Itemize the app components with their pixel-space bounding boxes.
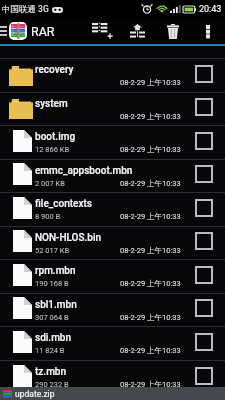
button[interactable]: Select recovery [188,59,219,92]
staticText: 08-2-29 上午10:33 [120,313,181,322]
staticText: 08-2-29 上午10:33 [120,212,181,221]
staticText: NON-HLOS.bin [35,232,102,244]
staticText: 中国联通 3G [2,4,49,15]
button[interactable]: system [0,93,225,125]
button[interactable]: boot.img [0,126,225,159]
staticText: 08-2-29 上午10:33 [120,112,181,121]
staticText: sdi.mbn [35,332,72,344]
button[interactable]: Select sdi.mbn [188,327,219,360]
staticText: 20:43 [199,4,222,15]
button[interactable]: rpm.mbn [0,260,225,293]
staticText: 8 900 B [35,212,61,221]
staticText: 08-2-29 上午10:33 [120,179,181,188]
button[interactable]: Select boot.img [188,126,219,159]
button[interactable]: Select rpm.mbn [188,260,219,293]
staticText: 08-2-29 上午10:33 [120,279,181,288]
staticText: 11 824 B [35,346,65,355]
button[interactable]: Select NON-HLOS.bin [188,227,219,259]
button[interactable]: recovery [0,59,225,92]
staticText: 08-2-29 上午10:33 [120,246,181,255]
button[interactable]: Select tz.mbn [188,361,219,394]
button[interactable]: Delete [159,18,186,44]
button[interactable]: Select emmc_appsboot.mbn [188,160,219,192]
staticText: file_contexts [35,198,92,210]
button[interactable]: More options [194,18,221,44]
staticText: emmc_appsboot.mbn [35,165,133,177]
staticText: 08-2-29 上午10:33 [120,346,181,355]
button[interactable]: Up [0,18,55,44]
staticText: 08-2-29 上午10:33 [120,145,181,154]
staticText: rpm.mbn [35,265,76,277]
staticText: system [35,98,68,110]
button[interactable]: tz.mbn [0,361,225,394]
staticText: tz.mbn [35,366,67,378]
staticText: sbl1.mbn [35,299,77,311]
staticText: recovery [35,64,74,76]
button[interactable]: update.zip [0,387,225,400]
staticText: boot.img [35,131,76,143]
button[interactable]: Select sbl1.mbn [188,294,219,326]
staticText: 08-2-29 上午10:33 [120,78,181,87]
staticText: 12 866 KB [35,145,70,154]
staticText: 08-2-29 上午10:33 [120,380,181,389]
staticText: 190 168 B [35,279,69,288]
staticText: 290 232 B [35,380,69,389]
staticText: 52 017 KB [35,246,70,255]
staticText: 2 007 KB [35,179,65,188]
staticText: RAR [31,24,55,39]
staticText: 307 064 B [35,313,69,322]
button[interactable]: emmc_appsboot.mbn [0,160,225,192]
button[interactable]: sdi.mbn [0,327,225,360]
button[interactable]: Select system [188,93,219,125]
button[interactable]: Add to archive [88,18,117,44]
button[interactable]: NON-HLOS.bin [0,227,225,259]
button[interactable]: Extract [124,18,151,44]
button[interactable]: file_contexts [0,193,225,226]
button[interactable]: Select file_contexts [188,193,219,226]
staticText: update.zip [15,389,55,399]
button[interactable]: sbl1.mbn [0,294,225,326]
